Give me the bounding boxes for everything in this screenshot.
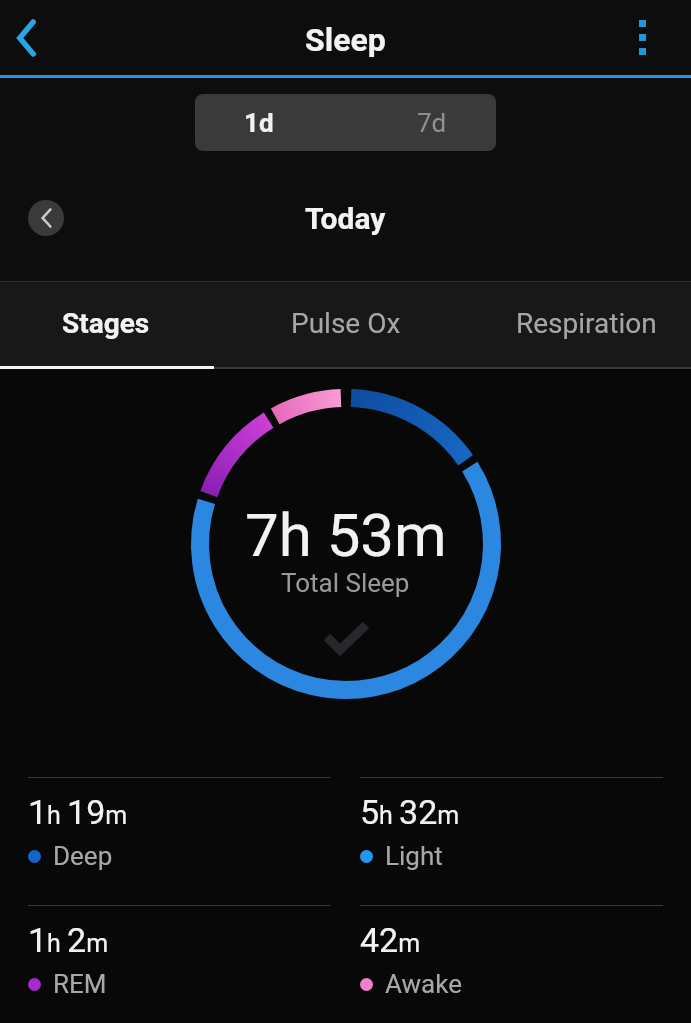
- button[interactable]: Stages: [0, 282, 221, 369]
- staticText: 1h 19m: [28, 792, 128, 832]
- staticText: Awake: [385, 969, 462, 999]
- staticText: Pulse Ox: [291, 307, 401, 340]
- button[interactable]: 5h 32m: [360, 777, 663, 871]
- button[interactable]: [639, 20, 646, 55]
- staticText: Today: [305, 201, 386, 236]
- button[interactable]: Respiration: [471, 282, 691, 369]
- button[interactable]: 1h 2m: [28, 905, 330, 999]
- button[interactable]: 1d: [195, 94, 345, 151]
- button[interactable]: 7d: [345, 94, 496, 151]
- staticText: 1d: [244, 108, 274, 138]
- staticText: Respiration: [516, 307, 657, 340]
- staticText: 42m: [360, 920, 421, 960]
- button[interactable]: 1h 19m: [28, 777, 330, 871]
- staticText: Deep: [53, 841, 113, 871]
- staticText: Total Sleep: [281, 568, 410, 598]
- staticText: Stages: [62, 307, 150, 340]
- staticText: 5h 32m: [360, 792, 460, 832]
- staticText: 7h 53m: [245, 500, 447, 570]
- button[interactable]: Pulse Ox: [231, 282, 461, 369]
- button[interactable]: [28, 200, 64, 236]
- staticText: REM: [53, 969, 107, 999]
- staticText: 1h 2m: [28, 920, 109, 960]
- button[interactable]: 42m: [360, 905, 663, 999]
- staticText: Sleep: [305, 21, 386, 59]
- staticText: 7d: [417, 108, 447, 138]
- staticText: Light: [385, 841, 443, 871]
- button[interactable]: [4, 16, 48, 60]
